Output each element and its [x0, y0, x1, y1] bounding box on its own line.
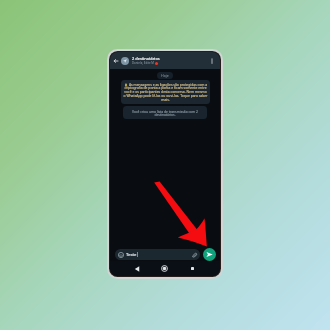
button[interactable]: Send — [203, 248, 216, 261]
button[interactable]: Back — [131, 263, 142, 274]
button[interactable]: Attach — [191, 252, 197, 258]
staticText: Daniela, Edite M — [132, 61, 154, 65]
staticText: Hoje — [161, 73, 169, 78]
staticText: 2 destinatários — [132, 56, 160, 61]
button[interactable]: 🔒 As mensagens e as ligações são protegi… — [121, 80, 210, 104]
button[interactable]: More options — [207, 56, 217, 66]
staticText: 🔒 As mensagens e as ligações são protegi… — [123, 82, 208, 102]
button[interactable]: Teste — [115, 249, 200, 260]
button[interactable]: Recents — [187, 263, 198, 274]
staticText: Você criou uma lista de transmissão com … — [127, 109, 203, 117]
staticText: Teste — [126, 252, 137, 258]
button[interactable]: Back — [113, 58, 119, 64]
button[interactable]: Hoje — [157, 72, 173, 79]
button[interactable]: Home — [159, 263, 170, 274]
